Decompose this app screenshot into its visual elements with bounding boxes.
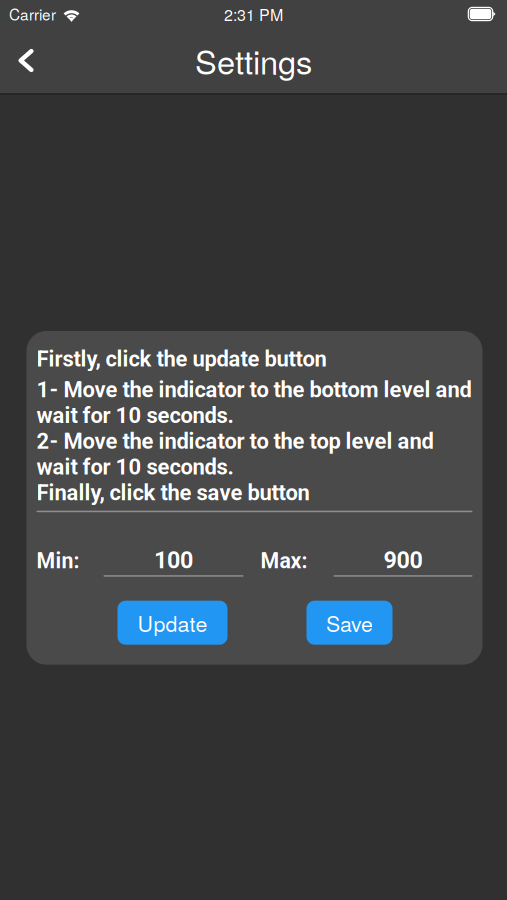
staticText: 2:31 PM xyxy=(224,2,283,25)
staticText: Min: xyxy=(36,548,79,573)
staticText: Firstly, click the update button xyxy=(36,346,326,372)
staticText: 1- Move the indicator to the bottom leve… xyxy=(36,377,471,428)
staticText: 900 xyxy=(383,546,422,574)
button[interactable]: Update xyxy=(117,601,227,645)
staticText: 2- Move the indicator to the top level a… xyxy=(36,428,433,480)
staticText: Finally, click the save button xyxy=(36,480,309,506)
staticText: Update xyxy=(137,607,207,638)
button[interactable]: Back xyxy=(0,33,50,87)
button[interactable]: Save xyxy=(306,601,392,645)
staticText: Settings xyxy=(195,37,312,84)
staticText: Carrier xyxy=(9,3,56,25)
staticText: Save xyxy=(326,607,373,638)
staticText: 100 xyxy=(154,546,193,574)
staticText: Max: xyxy=(260,548,307,573)
